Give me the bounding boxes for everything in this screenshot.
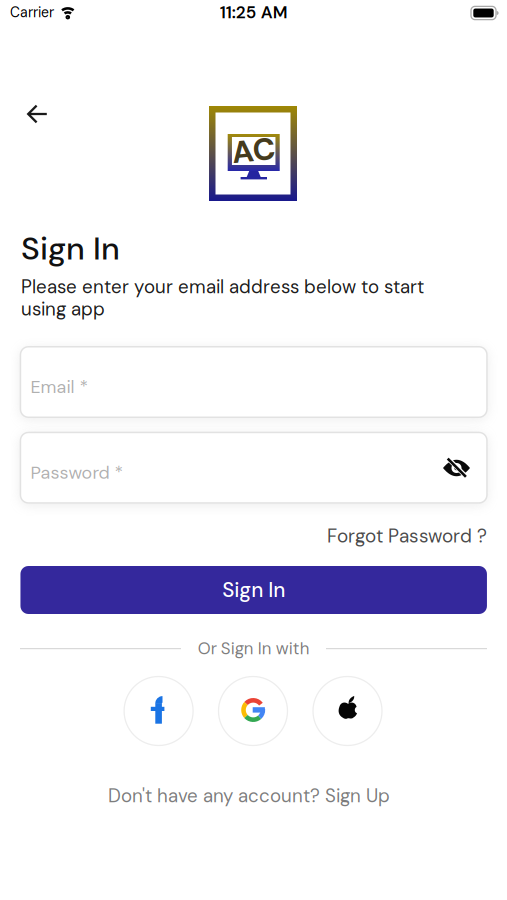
staticText: Don't have any account? Sign Up [108, 784, 390, 808]
staticText: Carrier [10, 3, 54, 22]
button[interactable]: Password * [20, 432, 487, 503]
staticText: Sign In [21, 228, 120, 269]
button[interactable] [124, 676, 193, 745]
button[interactable]: Don't have any account? Sign Up [108, 784, 390, 808]
button[interactable]: Sign In [20, 566, 487, 614]
staticText: AC [232, 130, 276, 170]
staticText: Or Sign In with [198, 638, 310, 659]
staticText: Email * [30, 375, 88, 399]
staticText: Please enter your email address below to… [21, 275, 424, 321]
staticText: 11:25 AM [220, 1, 288, 24]
staticText: Forgot Password ? [327, 524, 487, 548]
button[interactable] [313, 676, 382, 745]
button[interactable] [15, 94, 59, 134]
button[interactable] [434, 446, 478, 490]
staticText: Sign In [222, 576, 285, 603]
button[interactable] [218, 676, 287, 745]
staticText: Password * [30, 461, 123, 484]
button[interactable]: Forgot Password ? [20, 524, 487, 548]
button[interactable]: Email * [20, 347, 487, 417]
